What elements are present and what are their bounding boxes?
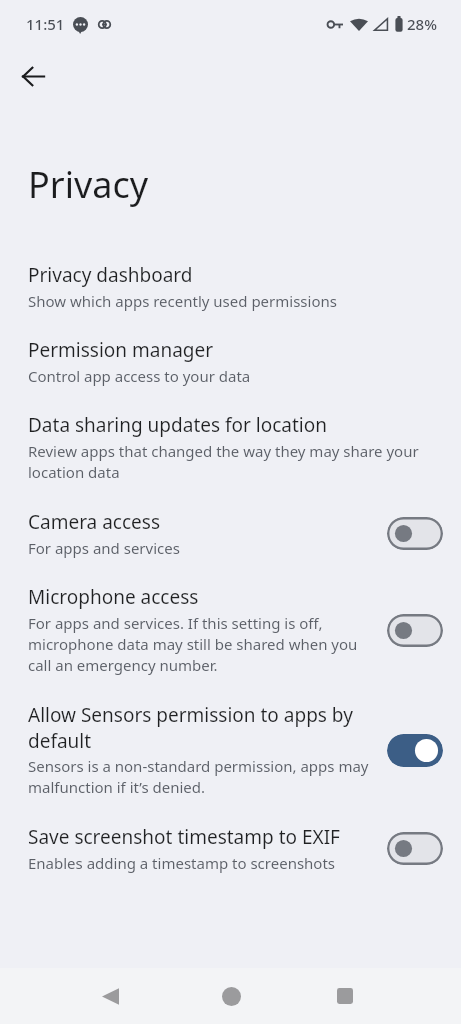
staticText: Sensors is a non-standard permission, ap… (28, 756, 373, 798)
button[interactable]: Back (88, 974, 132, 1018)
staticText: Camera access (28, 509, 161, 535)
button[interactable]: Recent apps (323, 974, 367, 1018)
button[interactable]: Microphone access (0, 571, 461, 689)
button[interactable]: Home (209, 974, 253, 1018)
staticText: Permission manager (28, 337, 214, 363)
staticText: Review apps that changed the way they ma… (28, 441, 429, 483)
button[interactable]: Switch off (387, 517, 443, 550)
button[interactable]: Privacy dashboard (0, 249, 461, 324)
staticText: For apps and services. If this setting i… (28, 613, 373, 676)
staticText: Privacy (28, 160, 149, 209)
staticText: Control app access to your data (28, 366, 251, 386)
staticText: 28% (407, 14, 437, 34)
staticText: Show which apps recently used permission… (28, 291, 337, 311)
staticText: Data sharing updates for location (28, 412, 327, 438)
staticText: Allow Sensors permission to apps by defa… (28, 702, 373, 753)
button[interactable]: Switch off (387, 614, 443, 647)
staticText: Enables adding a timestamp to screenshot… (28, 853, 336, 873)
staticText: 11:51 (26, 14, 65, 34)
button[interactable]: Permission manager (0, 324, 461, 399)
button[interactable]: Data sharing updates for location (0, 399, 461, 496)
button[interactable]: Back (10, 53, 56, 99)
button[interactable]: Save screenshot timestamp to EXIF (0, 811, 461, 886)
staticText: Privacy dashboard (28, 262, 193, 288)
button[interactable]: Allow Sensors permission to apps by defa… (0, 689, 461, 811)
staticText: For apps and services (28, 538, 180, 558)
button[interactable]: Switch on (387, 734, 443, 767)
button[interactable]: Camera access (0, 496, 461, 571)
staticText: Microphone access (28, 584, 199, 610)
button[interactable]: Switch off (387, 832, 443, 865)
staticText: Save screenshot timestamp to EXIF (28, 824, 340, 850)
